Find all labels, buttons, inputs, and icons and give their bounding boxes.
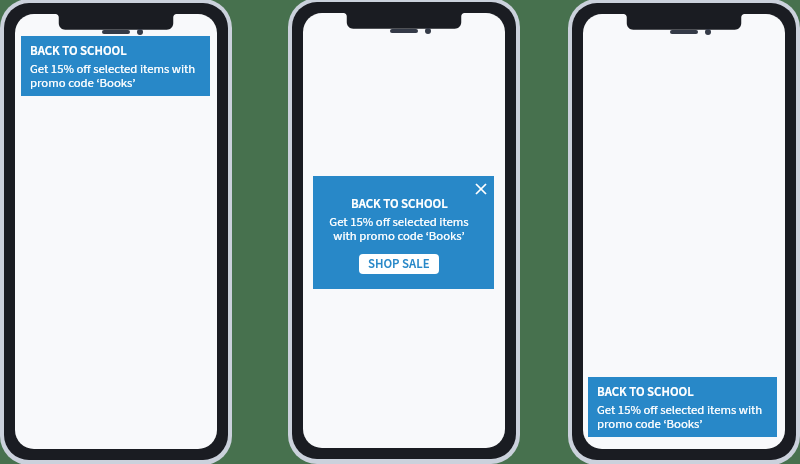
button[interactable]: SHOP SALE: [359, 254, 439, 274]
staticText: BACK TO SCHOOL: [597, 383, 694, 401]
staticText: Get 15% off selected items with promo co…: [597, 401, 771, 433]
button[interactable]: BACK TO SCHOOL: [21, 36, 210, 96]
staticText: BACK TO SCHOOL: [351, 195, 448, 213]
button[interactable]: BACK TO SCHOOL: [588, 377, 777, 437]
button[interactable]: Close: [475, 183, 486, 194]
staticText: Get 15% off selected items with promo co…: [30, 60, 204, 92]
staticText: Get 15% off selected items with promo co…: [323, 213, 475, 245]
staticText: SHOP SALE: [368, 255, 430, 273]
staticText: BACK TO SCHOOL: [30, 42, 127, 60]
